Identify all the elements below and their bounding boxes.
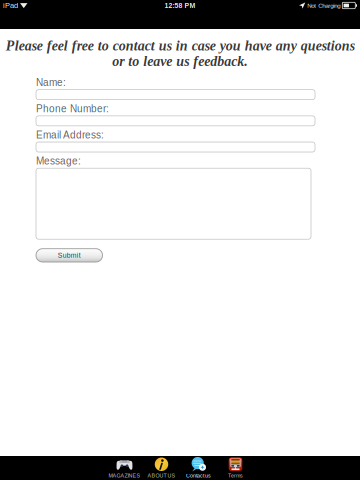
- staticText: iPad: [3, 1, 18, 10]
- staticText: Terms: [228, 473, 243, 479]
- button[interactable]: ABOUT US: [143, 456, 180, 480]
- button[interactable]: Terms: [217, 456, 254, 480]
- staticText: Phone Number:: [36, 103, 109, 114]
- staticText: Contact us: [186, 473, 211, 479]
- button[interactable]: Submit: [36, 249, 102, 262]
- staticText: MAGAZINES: [108, 473, 140, 479]
- staticText: 12:58 PM: [164, 2, 195, 9]
- button[interactable]: Contact us: [180, 456, 217, 480]
- staticText: Not Charging: [307, 2, 340, 9]
- staticText: Email Address:: [36, 129, 104, 141]
- staticText: ABOUT US: [147, 473, 175, 479]
- staticText: Submit: [58, 251, 81, 259]
- staticText: Name:: [36, 77, 66, 88]
- button[interactable]: MAGAZINES: [106, 456, 143, 480]
- staticText: Message:: [36, 155, 81, 167]
- staticText: Please feel free to contact us in case y…: [5, 38, 354, 69]
